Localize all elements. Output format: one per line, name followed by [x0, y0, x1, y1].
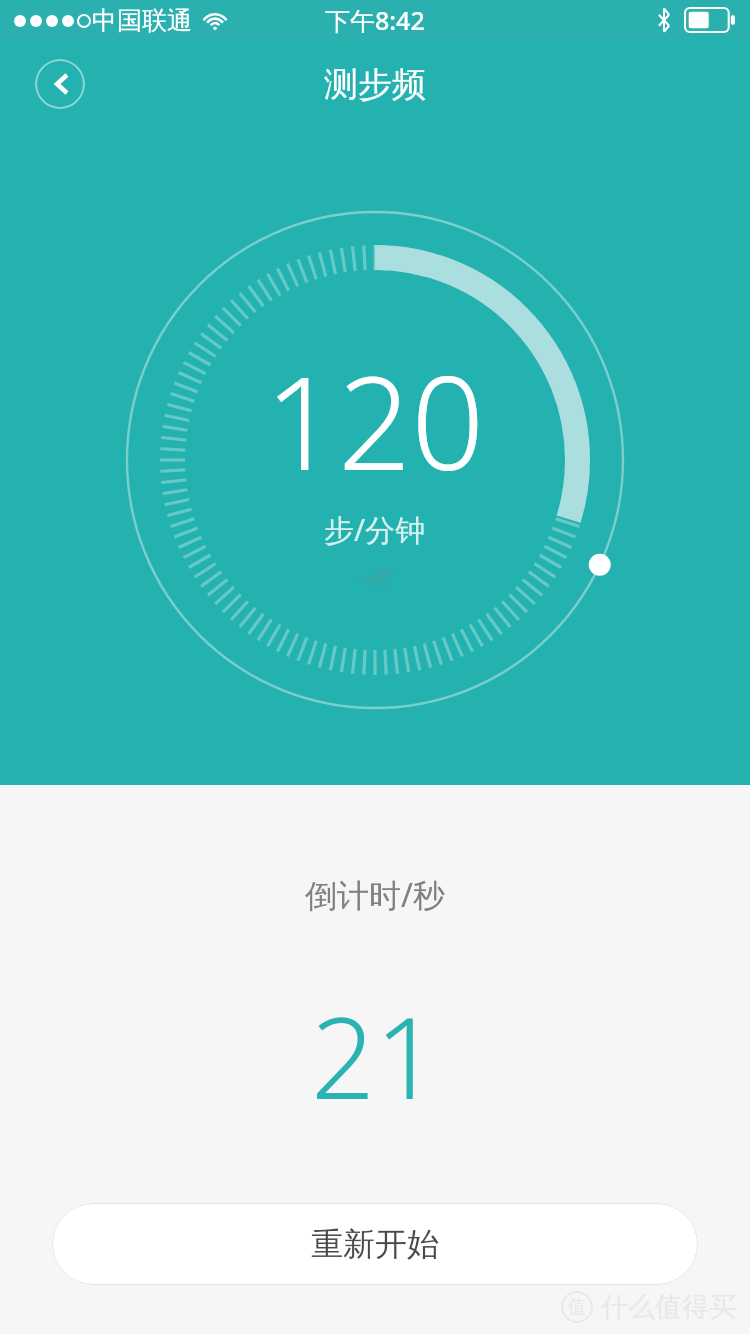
- staticText: 21: [311, 979, 439, 1132]
- staticText: 120: [265, 333, 485, 507]
- staticText: 倒计时/秒: [305, 873, 445, 917]
- button[interactable]: 重新开始: [52, 1203, 698, 1285]
- staticText: 值: [568, 1296, 586, 1319]
- button[interactable]: Back: [35, 59, 85, 109]
- staticText: 中国联通: [92, 5, 192, 36]
- staticText: 下午8:42: [325, 3, 425, 37]
- staticText: 什么值得买: [601, 1290, 736, 1324]
- staticText: 步/分钟: [324, 509, 426, 550]
- staticText: 测步频: [324, 63, 426, 106]
- staticText: 重新开始: [311, 1224, 439, 1264]
